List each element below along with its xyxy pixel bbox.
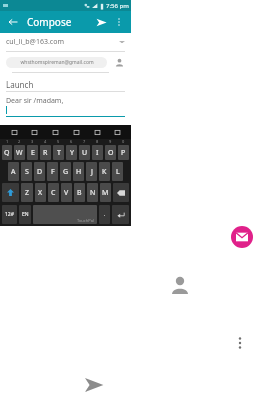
staticText: V bbox=[64, 188, 69, 198]
staticText: 7 bbox=[83, 139, 86, 144]
button[interactable]: EN bbox=[19, 205, 31, 224]
staticText: N bbox=[90, 188, 96, 198]
button[interactable]: Q bbox=[2, 145, 12, 160]
button[interactable]: Send bbox=[82, 373, 106, 397]
button[interactable]: Y bbox=[66, 145, 77, 160]
staticText: A bbox=[11, 167, 16, 177]
button[interactable]: cul_li_b@163.com bbox=[6, 33, 125, 51]
staticText: O bbox=[108, 148, 114, 158]
button[interactable]: Launch bbox=[6, 78, 125, 91]
staticText: B bbox=[77, 188, 82, 198]
button[interactable]: Compose mail bbox=[231, 226, 253, 248]
staticText: J bbox=[91, 167, 93, 177]
button[interactable]: O bbox=[105, 145, 116, 160]
button[interactable]: F bbox=[47, 162, 58, 181]
staticText: Z bbox=[25, 188, 30, 198]
staticText: TouchPal bbox=[77, 218, 94, 223]
staticText: K bbox=[102, 167, 107, 177]
staticText: C bbox=[51, 188, 56, 198]
staticText: Y bbox=[70, 148, 74, 158]
staticText: L bbox=[116, 167, 120, 177]
staticText: X bbox=[38, 188, 43, 198]
button[interactable]: C bbox=[48, 183, 59, 202]
staticText: Compose bbox=[27, 15, 72, 29]
staticText: 3 bbox=[31, 139, 34, 144]
button[interactable]: R bbox=[40, 145, 51, 160]
staticText: Q bbox=[4, 148, 10, 158]
button[interactable]: T bbox=[53, 145, 64, 160]
button[interactable]: Add contact bbox=[113, 56, 125, 68]
button[interactable]: Send bbox=[93, 14, 109, 30]
button[interactable]: M bbox=[100, 183, 111, 202]
button[interactable]: Enter bbox=[112, 205, 129, 224]
staticText: H bbox=[76, 167, 82, 177]
button[interactable]: 12# bbox=[2, 205, 17, 224]
button[interactable]: whsthomspireman@gmail.com bbox=[6, 57, 107, 68]
button[interactable]: X bbox=[35, 183, 46, 202]
staticText: R bbox=[43, 148, 48, 158]
staticText: 4 bbox=[44, 139, 47, 144]
staticText: 6 bbox=[70, 139, 73, 144]
button[interactable]: H bbox=[73, 162, 84, 181]
button[interactable]: S bbox=[21, 162, 32, 181]
staticText: Launch bbox=[6, 79, 34, 90]
button[interactable]: N bbox=[87, 183, 98, 202]
staticText: T bbox=[57, 148, 61, 158]
staticText: E bbox=[31, 148, 35, 158]
staticText: Dear sir /madam, bbox=[6, 96, 64, 106]
staticText: 1 bbox=[6, 139, 9, 144]
button[interactable]: B bbox=[74, 183, 85, 202]
button[interactable]: V bbox=[61, 183, 72, 202]
staticText: F bbox=[51, 167, 55, 177]
button[interactable]: W bbox=[14, 145, 25, 160]
button[interactable]: . bbox=[99, 205, 110, 224]
staticText: 12# bbox=[5, 211, 14, 218]
button[interactable]: A bbox=[8, 162, 19, 181]
button[interactable]: E bbox=[27, 145, 38, 160]
staticText: 0 bbox=[122, 139, 125, 144]
staticText: 7:56 pm bbox=[106, 2, 129, 10]
staticText: cul_li_b@163.com bbox=[6, 37, 64, 47]
staticText: W bbox=[16, 148, 23, 158]
button[interactable]: Dear sir /madam, bbox=[6, 95, 125, 106]
button[interactable]: Space bbox=[33, 205, 97, 224]
button[interactable]: Z bbox=[21, 183, 33, 202]
button[interactable]: Key tool 1 bbox=[27, 125, 41, 139]
button[interactable]: D bbox=[34, 162, 45, 181]
button[interactable]: K bbox=[99, 162, 110, 181]
button[interactable]: Key tool 5 bbox=[110, 125, 124, 139]
button[interactable]: More options bbox=[112, 15, 126, 29]
staticText: EN bbox=[22, 211, 29, 218]
button[interactable]: U bbox=[79, 145, 90, 160]
button[interactable]: Key tool 2 bbox=[48, 125, 62, 139]
button[interactable]: Shift bbox=[2, 183, 19, 202]
button[interactable]: I bbox=[92, 145, 103, 160]
staticText: G bbox=[63, 167, 69, 177]
button[interactable]: More options bbox=[230, 333, 250, 353]
button[interactable]: Key tool 4 bbox=[90, 125, 104, 139]
button[interactable]: Contact bbox=[168, 273, 192, 297]
button[interactable]: J bbox=[86, 162, 97, 181]
button[interactable]: P bbox=[118, 145, 129, 160]
staticText: S bbox=[25, 167, 29, 177]
staticText: 2 bbox=[18, 139, 21, 144]
staticText: 9 bbox=[109, 139, 112, 144]
staticText: D bbox=[37, 167, 43, 177]
staticText: U bbox=[82, 148, 88, 158]
button[interactable]: Back bbox=[5, 14, 21, 30]
button[interactable]: G bbox=[60, 162, 71, 181]
staticText: M bbox=[102, 188, 109, 198]
staticText: 8 bbox=[96, 139, 99, 144]
button[interactable]: Key tool 3 bbox=[69, 125, 83, 139]
button[interactable]: Key tool 0 bbox=[7, 125, 21, 139]
button[interactable]: Backspace bbox=[113, 183, 129, 202]
staticText: whsthomspireman@gmail.com bbox=[20, 59, 94, 66]
button[interactable]: L bbox=[112, 162, 123, 181]
staticText: 5 bbox=[57, 139, 60, 144]
staticText: I bbox=[96, 148, 99, 158]
staticText: P bbox=[121, 148, 126, 158]
staticText: . bbox=[104, 211, 106, 218]
